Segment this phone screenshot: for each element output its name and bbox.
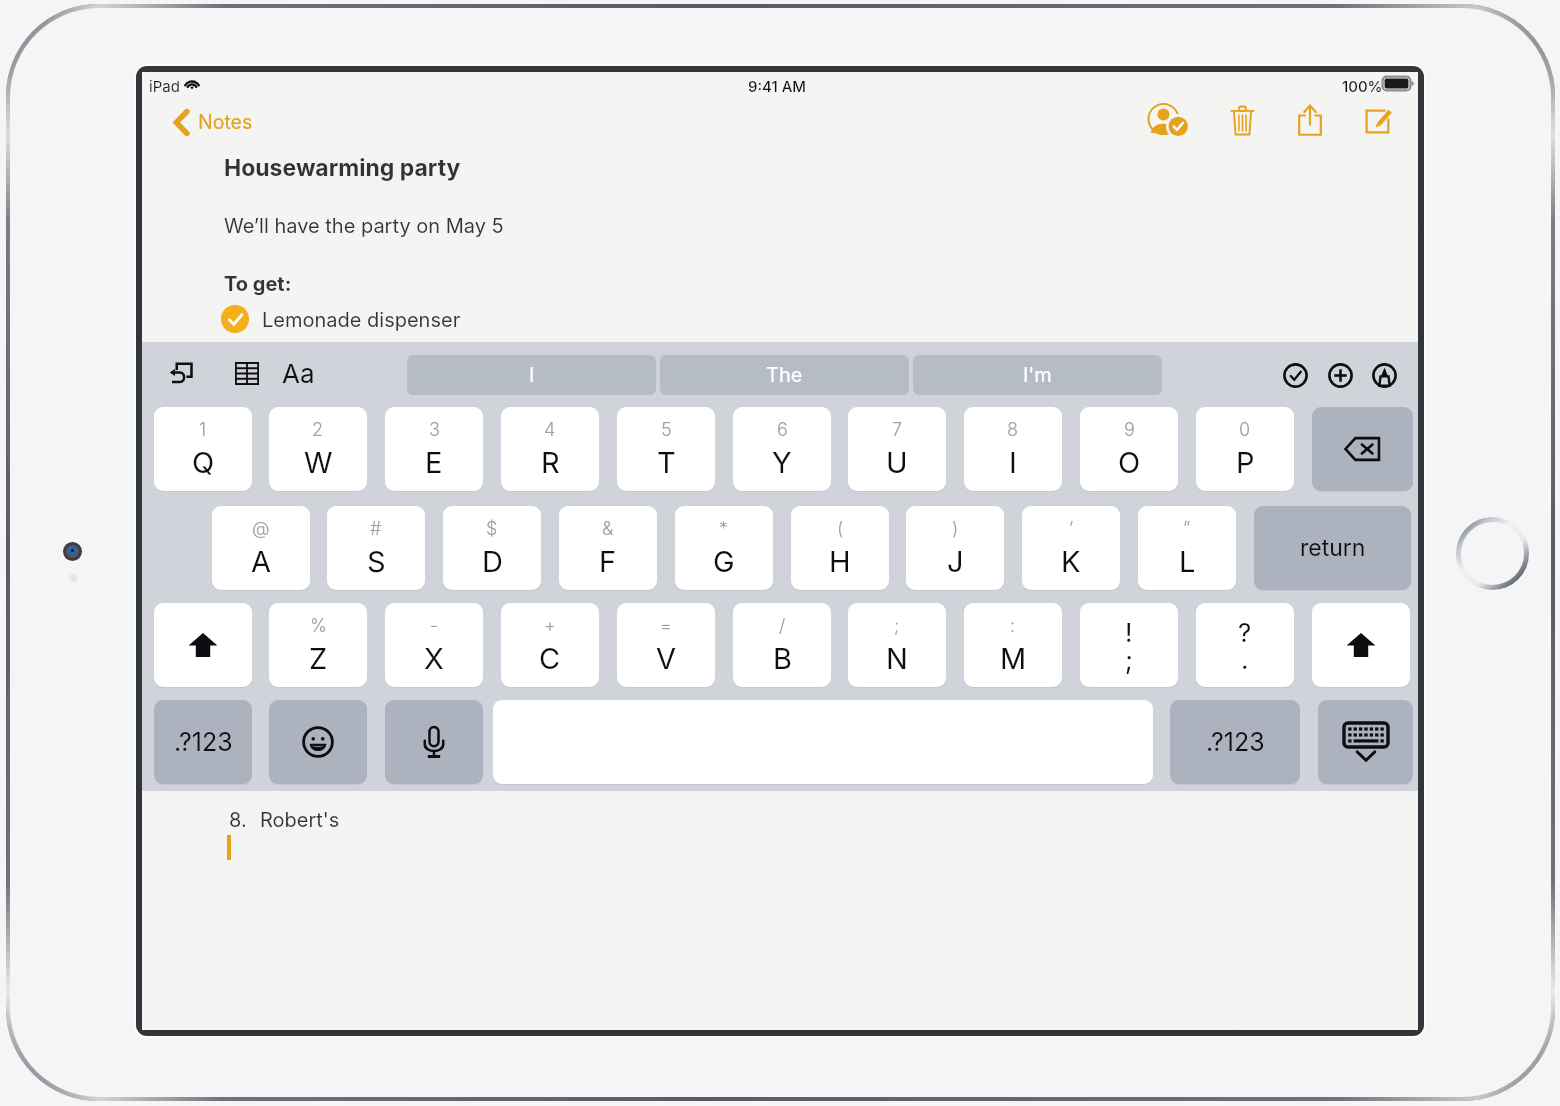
staticText: I [529, 363, 535, 387]
button[interactable]: Add attachment [1323, 358, 1357, 392]
button[interactable]: ) [906, 506, 1004, 590]
button[interactable]: 0 [1196, 407, 1294, 491]
staticText: ” [1183, 518, 1191, 540]
staticText: iPad [149, 77, 180, 95]
button[interactable]: Share [1277, 87, 1343, 153]
button[interactable]: Add people [1137, 87, 1203, 153]
button[interactable]: Markup [1367, 358, 1401, 392]
button[interactable]: Emoji [269, 700, 367, 784]
button[interactable]: ’ [1022, 506, 1120, 590]
button[interactable]: = [617, 603, 715, 687]
button[interactable]: * [675, 506, 773, 590]
button[interactable]: + [501, 603, 599, 687]
staticText: W [304, 445, 333, 480]
button[interactable]: Undo [162, 353, 200, 391]
button[interactable]: Hide keyboard [1318, 700, 1413, 784]
staticText: We’ll have the party on May 5 [224, 214, 504, 238]
staticText: .?123 [174, 727, 233, 757]
staticText: ) [952, 518, 959, 540]
staticText: O [1118, 445, 1141, 480]
staticText: I [1009, 445, 1017, 480]
staticText: Robert's [260, 808, 340, 832]
button[interactable]: Shift [154, 603, 252, 687]
staticText: 100% [1342, 77, 1383, 95]
button[interactable]: Shift [1312, 603, 1410, 687]
staticText: % [310, 615, 327, 637]
button[interactable]: I [407, 355, 656, 395]
button[interactable]: ( [791, 506, 889, 590]
button[interactable]: 1 [154, 407, 252, 491]
staticText: 9 [1124, 419, 1135, 441]
staticText: X [424, 641, 444, 676]
button[interactable]: Home [1456, 517, 1529, 590]
button[interactable]: return [1254, 506, 1411, 590]
staticText: / [779, 615, 786, 637]
button[interactable]: Notes [175, 102, 253, 142]
button[interactable]: Text format [278, 350, 318, 396]
button[interactable]: Delete note [1209, 87, 1275, 153]
button[interactable]: I'm [913, 355, 1162, 395]
staticText: return [1300, 534, 1366, 562]
staticText: Lemonade dispenser [262, 308, 461, 332]
button[interactable]: 5 [617, 407, 715, 491]
staticText: # [370, 518, 382, 540]
staticText: Q [192, 445, 215, 480]
button[interactable]: - [385, 603, 483, 687]
button[interactable]: ; [848, 603, 946, 687]
button[interactable]: : [964, 603, 1062, 687]
staticText: H [829, 544, 851, 579]
button[interactable]: Compose [1345, 87, 1411, 153]
staticText: P [1236, 445, 1255, 480]
staticText: D [482, 544, 503, 579]
staticText: The [766, 363, 803, 387]
staticText: 1 [199, 419, 207, 441]
button[interactable]: # [327, 506, 425, 590]
staticText: K [1061, 544, 1081, 579]
staticText: 0 [1239, 419, 1251, 441]
button[interactable]: The [660, 355, 909, 395]
staticText: Notes [198, 110, 253, 134]
button[interactable]: ? [1196, 603, 1294, 687]
button[interactable]: 4 [501, 407, 599, 491]
button[interactable]: Insert table [228, 354, 266, 392]
staticText: .?123 [1206, 727, 1265, 757]
button[interactable]: 6 [733, 407, 831, 491]
button[interactable]: .?123 [1170, 700, 1300, 784]
staticText: - [430, 615, 439, 637]
button[interactable]: @ [212, 506, 310, 590]
button[interactable]: .?123 [154, 700, 252, 784]
button[interactable]: ” [1138, 506, 1236, 590]
button[interactable]: Dictation [385, 700, 483, 784]
button[interactable]: / [733, 603, 831, 687]
button[interactable]: 9 [1080, 407, 1178, 491]
staticText: 9:41 AM [748, 77, 807, 95]
button[interactable]: 3 [385, 407, 483, 491]
staticText: R [541, 445, 560, 480]
button[interactable]: 2 [269, 407, 367, 491]
staticText: N [886, 641, 908, 676]
button[interactable]: 7 [848, 407, 946, 491]
button[interactable]: Backspace [1312, 407, 1413, 491]
staticText: G [713, 544, 735, 579]
button[interactable]: % [269, 603, 367, 687]
staticText: V [656, 641, 677, 676]
button[interactable]: ! [1080, 603, 1178, 687]
staticText: 5 [661, 419, 672, 441]
button[interactable] [221, 305, 249, 333]
staticText: 8 [1007, 419, 1019, 441]
staticText: = [660, 615, 672, 637]
staticText: J [947, 544, 964, 579]
staticText: ’ [1069, 518, 1074, 540]
button[interactable]: Checklist [1278, 358, 1312, 392]
staticText: F [599, 544, 617, 579]
staticText: Housewarming party [224, 154, 461, 182]
button[interactable]: 8 [964, 407, 1062, 491]
button[interactable]: & [559, 506, 657, 590]
staticText: 7 [892, 419, 903, 441]
button[interactable]: $ [443, 506, 541, 590]
staticText: @ [252, 518, 270, 540]
staticText: 6 [777, 419, 788, 441]
staticText: To get: [224, 272, 292, 296]
staticText: ( [837, 518, 844, 540]
